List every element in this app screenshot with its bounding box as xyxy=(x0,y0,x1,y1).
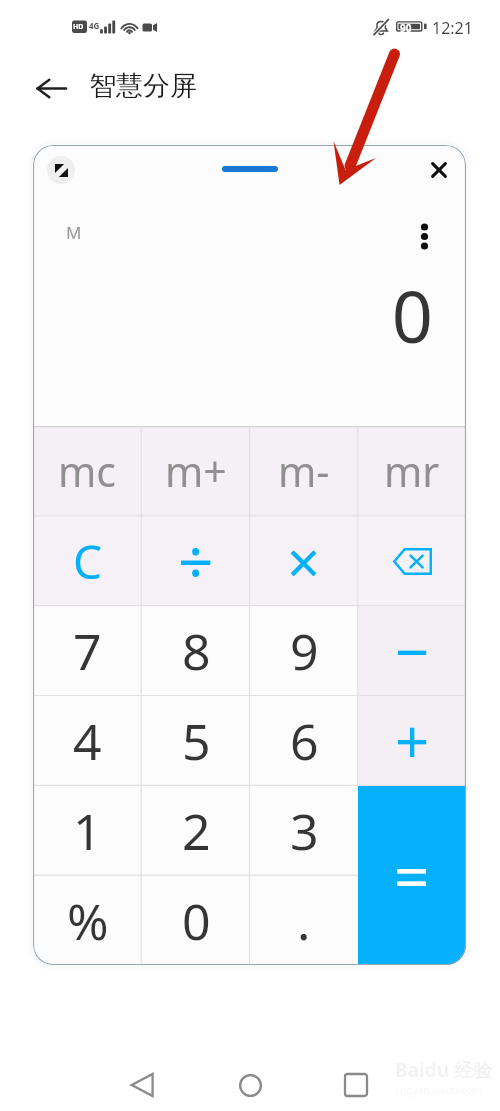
button[interactable]: 1 xyxy=(33,786,142,876)
staticText: mc xyxy=(58,443,117,499)
button[interactable]: Back xyxy=(119,1061,167,1109)
button[interactable]: Back xyxy=(27,64,75,112)
staticText: = xyxy=(394,834,430,918)
staticText: ÷ xyxy=(178,519,214,603)
staticText: 9 xyxy=(290,617,319,685)
staticText: 90 xyxy=(400,21,412,35)
button[interactable]: Home xyxy=(226,1061,274,1109)
button[interactable]: × xyxy=(250,516,358,606)
button[interactable]: − xyxy=(358,606,466,696)
button[interactable]: 7 xyxy=(33,606,142,696)
button[interactable]: C xyxy=(33,516,142,606)
button[interactable]: . xyxy=(250,876,358,965)
button[interactable]: m+ xyxy=(142,426,250,516)
button[interactable]: 8 xyxy=(142,606,250,696)
staticText: + xyxy=(395,700,430,782)
button[interactable]: 6 xyxy=(250,696,358,786)
button[interactable]: 2 xyxy=(142,786,250,876)
button[interactable]: m- xyxy=(250,426,358,516)
button[interactable]: ÷ xyxy=(142,516,250,606)
button[interactable]: % xyxy=(33,876,142,965)
button[interactable]: 3 xyxy=(250,786,358,876)
button[interactable]: Recents xyxy=(332,1061,380,1109)
button[interactable]: mr xyxy=(358,426,466,516)
button[interactable]: 0 xyxy=(142,876,250,965)
button[interactable]: Close xyxy=(419,150,459,190)
button[interactable]: More options xyxy=(402,214,446,258)
button[interactable]: 5 xyxy=(142,696,250,786)
staticText: 5 xyxy=(182,707,211,775)
button[interactable]: mc xyxy=(33,426,142,516)
staticText: 2 xyxy=(182,797,211,865)
staticText: 0 xyxy=(182,887,211,955)
staticText: 8 xyxy=(182,617,211,685)
staticText: . xyxy=(297,887,311,955)
staticText: C xyxy=(73,530,103,593)
staticText: × xyxy=(287,522,321,601)
staticText: Baidu 经验 xyxy=(395,1057,492,1083)
button[interactable]: Split screen xyxy=(47,156,75,184)
staticText: 1 xyxy=(73,797,102,865)
button[interactable]: Backspace xyxy=(358,516,466,606)
staticText: 6 xyxy=(290,707,319,775)
staticText: 7 xyxy=(73,617,102,685)
staticText: 4 xyxy=(73,707,102,775)
staticText: % xyxy=(67,887,109,955)
staticText: m- xyxy=(278,443,330,499)
button[interactable]: 4 xyxy=(33,696,142,786)
staticText: 0 xyxy=(33,266,433,364)
staticText: − xyxy=(395,610,430,692)
staticText: 4G xyxy=(89,20,100,31)
button[interactable]: Drag handle xyxy=(222,166,278,172)
button[interactable]: + xyxy=(358,696,466,786)
staticText: mr xyxy=(384,443,440,499)
button[interactable]: 9 xyxy=(250,606,358,696)
staticText: HD xyxy=(73,22,84,32)
staticText: m+ xyxy=(165,443,227,499)
staticText: 智慧分屏 xyxy=(89,69,197,103)
staticText: 3 xyxy=(290,797,319,865)
staticText: 12:21 xyxy=(432,17,473,39)
button[interactable]: = xyxy=(358,786,466,965)
staticText: M xyxy=(66,221,82,244)
